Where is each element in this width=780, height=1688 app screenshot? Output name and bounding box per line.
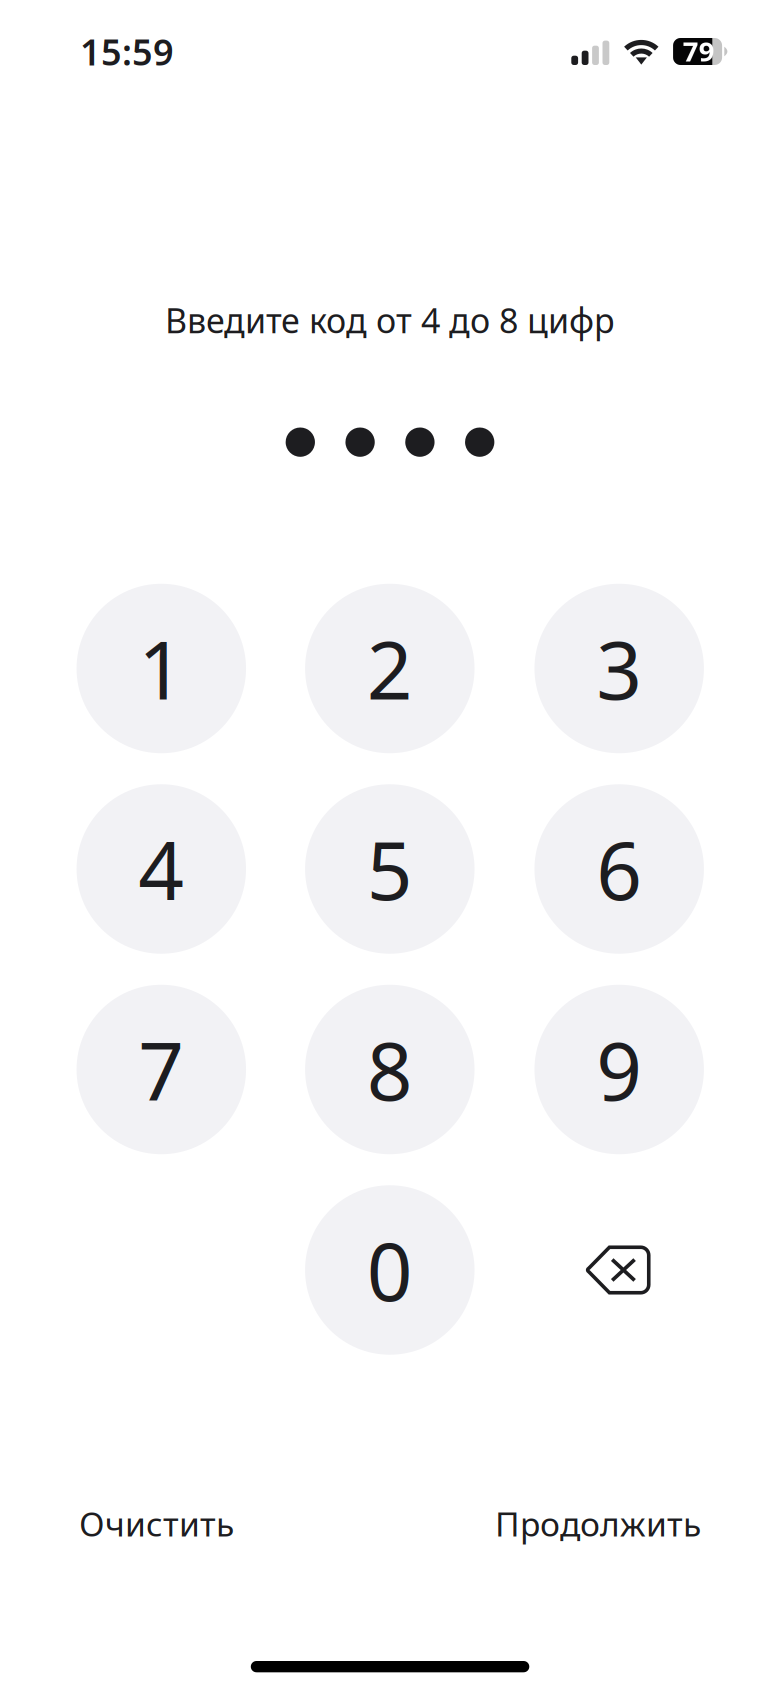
button[interactable]: 6 xyxy=(534,784,704,954)
button[interactable]: 4 xyxy=(77,784,246,954)
button[interactable]: 5 xyxy=(305,784,475,954)
staticText: Продолжить xyxy=(495,1501,701,1546)
staticText: 4 xyxy=(138,814,184,923)
staticText: 8 xyxy=(367,1015,413,1124)
staticText: Введите код от 4 до 8 цифр xyxy=(165,297,615,343)
staticText: 79 xyxy=(683,32,715,69)
staticText: Очистить xyxy=(79,1501,234,1546)
button[interactable]: Продолжить xyxy=(489,1488,707,1559)
button[interactable]: Delete xyxy=(533,1185,703,1355)
staticText: 1 xyxy=(138,614,184,723)
button[interactable]: 3 xyxy=(534,584,704,753)
staticText: 0 xyxy=(367,1215,413,1324)
staticText: 5 xyxy=(367,814,413,923)
button[interactable]: 2 xyxy=(305,584,475,753)
button[interactable]: 8 xyxy=(305,985,475,1154)
button[interactable]: Очистить xyxy=(73,1488,240,1559)
button[interactable]: 1 xyxy=(77,584,246,753)
staticText: 7 xyxy=(138,1015,184,1124)
staticText: 9 xyxy=(596,1015,642,1124)
button[interactable]: 9 xyxy=(534,985,704,1154)
button[interactable]: 0 xyxy=(305,1185,475,1355)
staticText: 15:59 xyxy=(80,27,174,76)
staticText: 6 xyxy=(596,814,642,923)
staticText: 3 xyxy=(596,614,642,723)
staticText: 2 xyxy=(367,614,413,723)
button[interactable]: 7 xyxy=(77,985,246,1154)
